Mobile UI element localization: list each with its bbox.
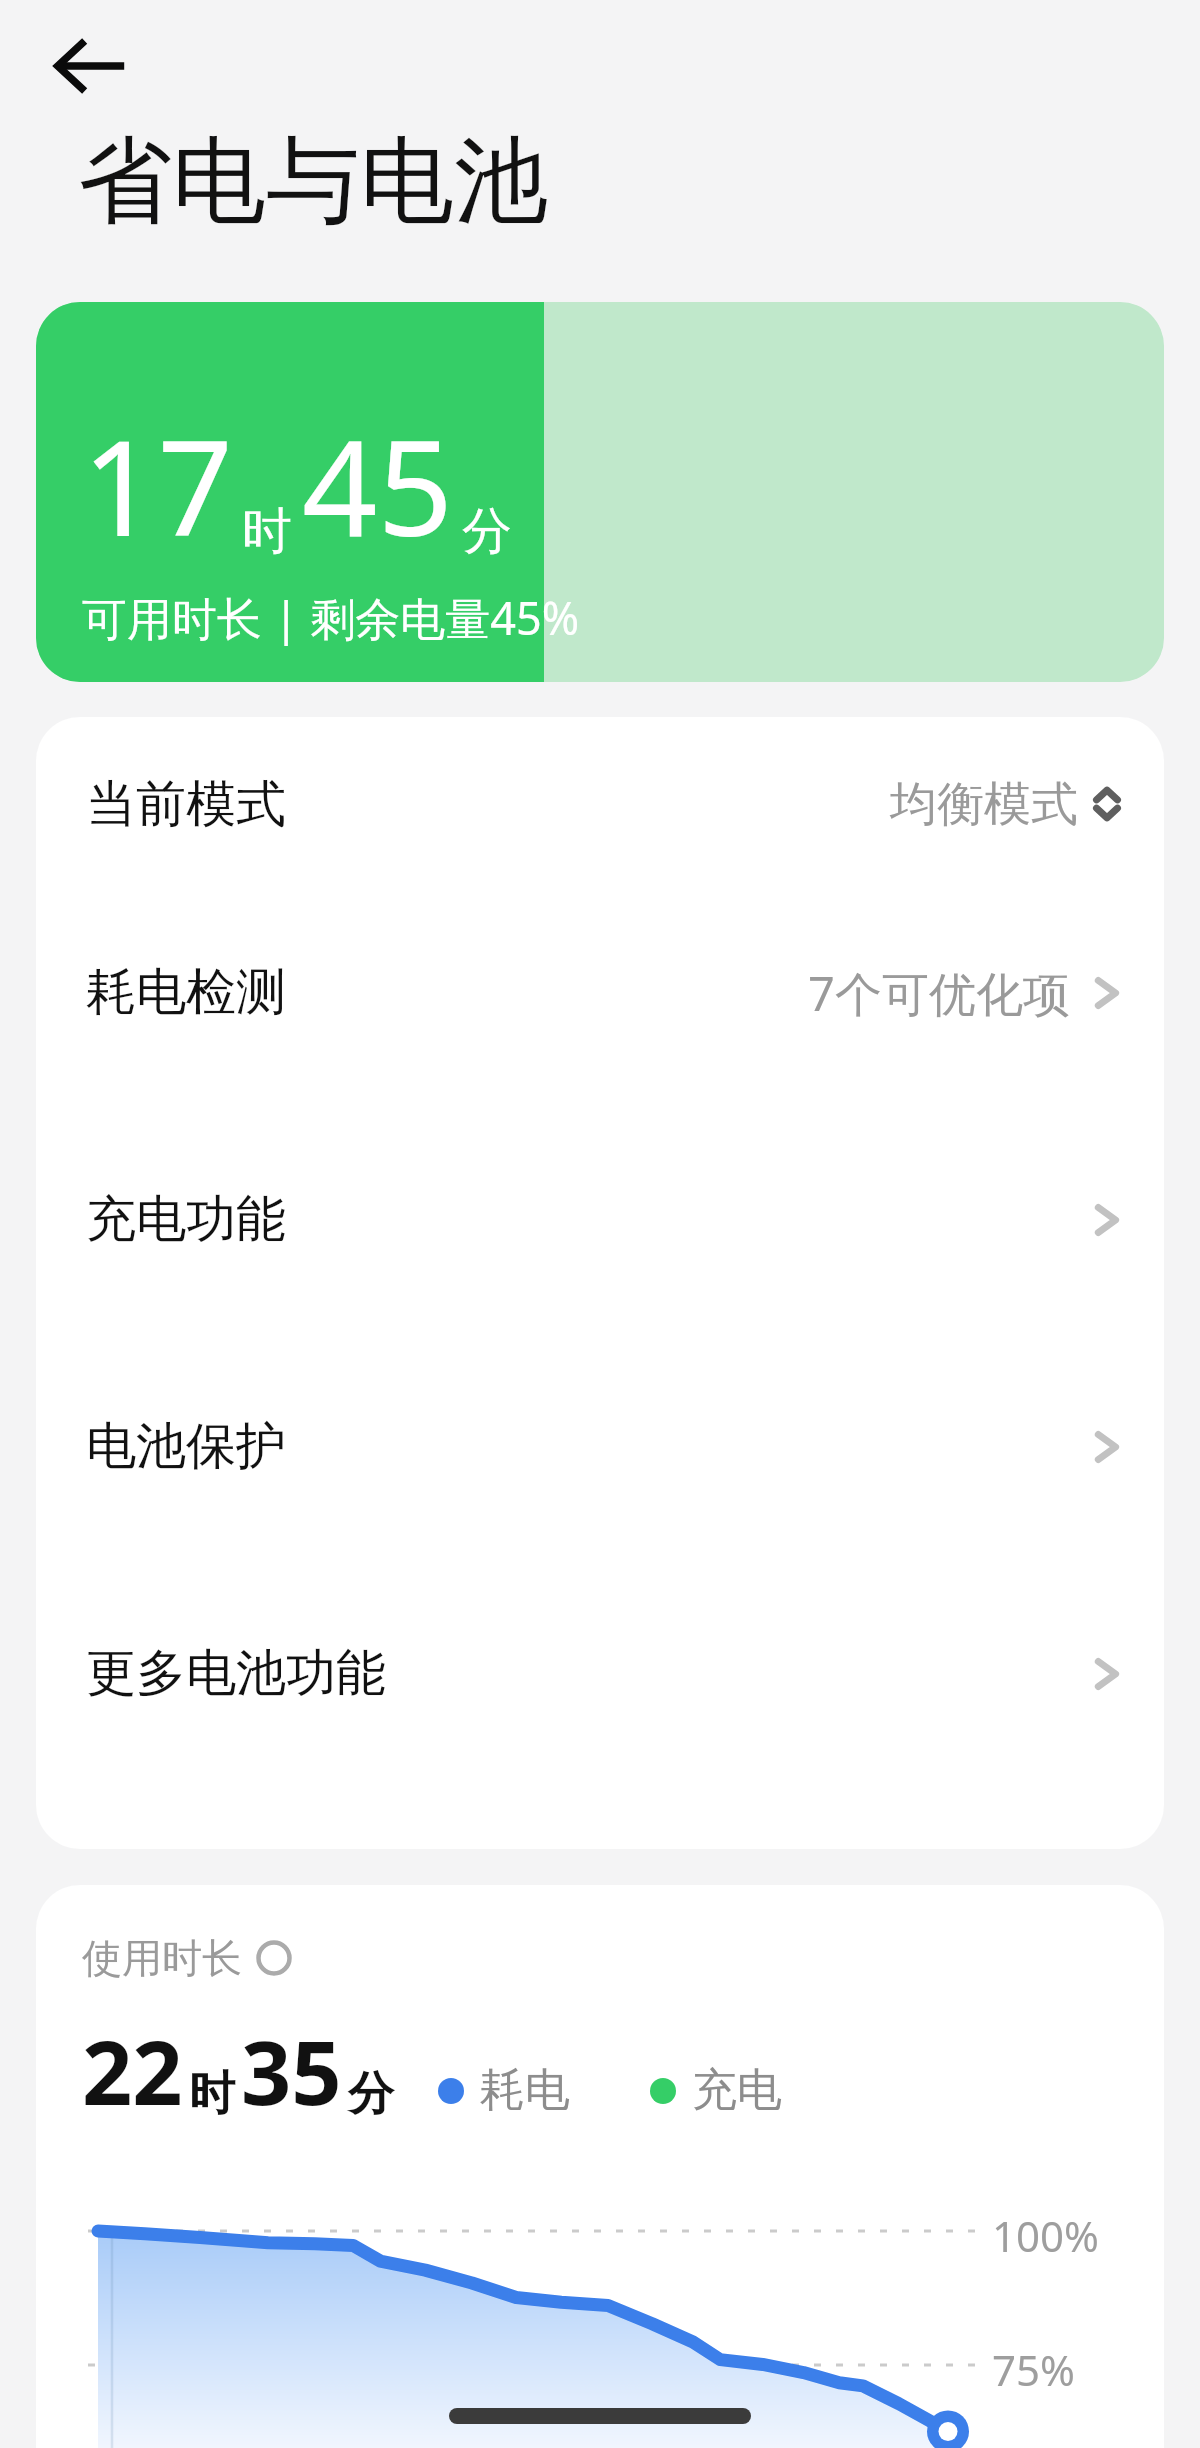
staticText: 100% (992, 2207, 1099, 2264)
button[interactable]: 更多电池功能 (36, 1560, 1164, 1787)
staticText: 7个可优化项 (808, 961, 1070, 1025)
button[interactable]: 当前模式 (36, 729, 1164, 879)
staticText: 更多电池功能 (86, 1642, 386, 1705)
button[interactable]: 17 (36, 302, 1164, 682)
staticText: 17 (82, 395, 234, 575)
staticText: 35 (241, 2011, 342, 2131)
staticText: 省电与电池 (78, 122, 548, 240)
staticText: 22 (82, 2011, 183, 2131)
staticText: 耗电 (480, 2062, 570, 2119)
staticText: 时 (242, 500, 292, 563)
staticText: 可用时长 | 剩余电量45% (82, 587, 580, 648)
staticText: 当前模式 (86, 773, 286, 836)
button[interactable]: 电池保护 (36, 1333, 1164, 1560)
staticText: 分 (348, 2065, 394, 2123)
staticText: 电池保护 (86, 1415, 286, 1478)
button[interactable]: 充电功能 (36, 1106, 1164, 1333)
staticText: 充电 (692, 2062, 782, 2119)
staticText: 耗电检测 (86, 961, 286, 1024)
staticText: 均衡模式 (890, 775, 1078, 834)
staticText: 分 (462, 500, 512, 563)
button[interactable]: 耗电检测 (36, 879, 1164, 1106)
staticText: 75% (992, 2341, 1075, 2398)
staticText: 时 (189, 2065, 235, 2123)
staticText: 充电功能 (86, 1188, 286, 1251)
button[interactable]: Back (52, 28, 128, 104)
staticText: 使用时长 (82, 1933, 242, 1983)
staticText: 45 (302, 395, 454, 575)
